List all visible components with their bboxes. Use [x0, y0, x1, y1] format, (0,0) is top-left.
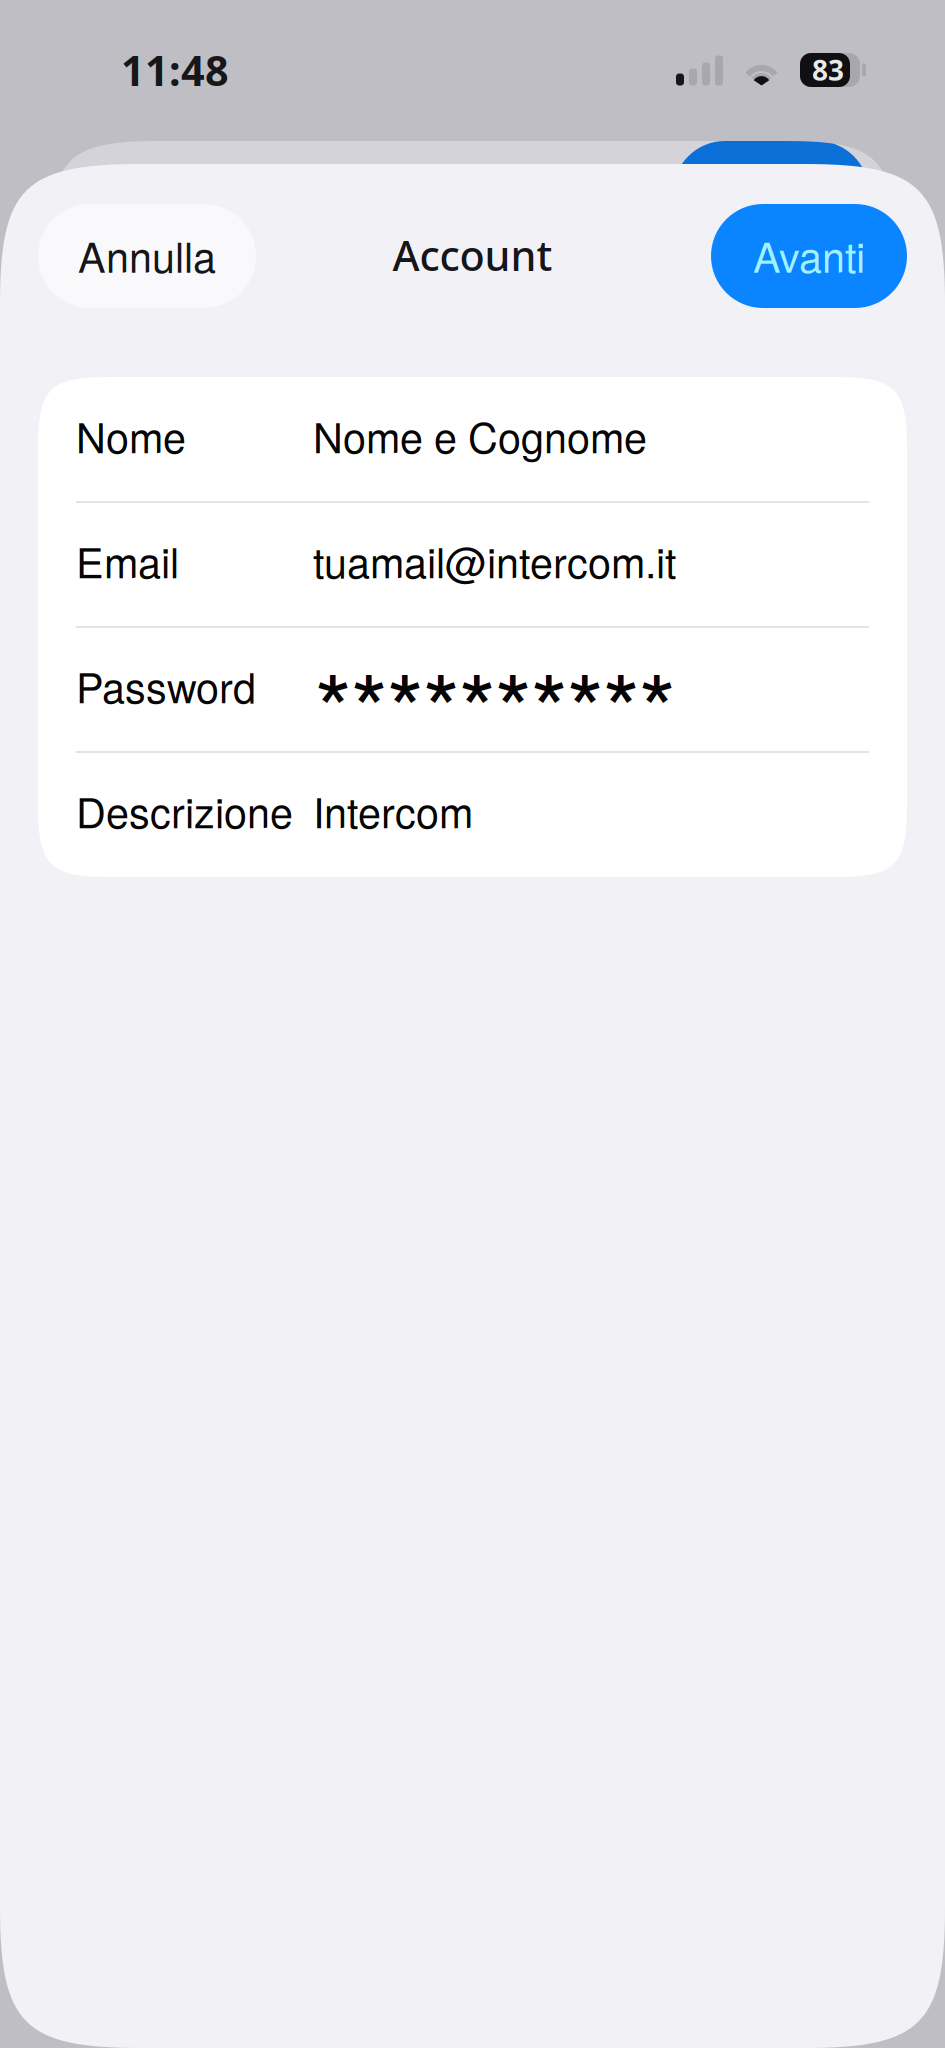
staticText: Nome: [76, 406, 186, 465]
staticText: Avanti: [753, 225, 865, 285]
staticText: Password: [76, 656, 256, 715]
staticText: 83: [812, 51, 844, 89]
staticText: ∗∗∗∗∗∗∗∗∗∗: [313, 617, 677, 732]
staticText: Descrizione: [76, 781, 293, 840]
staticText: 11:48: [121, 42, 229, 98]
staticText: Account: [392, 227, 552, 283]
button[interactable]: Avanti: [711, 204, 907, 308]
staticText: Email: [76, 531, 179, 590]
staticText: Intercom: [313, 781, 473, 840]
staticText: Annulla: [78, 225, 216, 285]
staticText: tuamail@intercom.it: [313, 531, 676, 590]
button[interactable]: Annulla: [38, 204, 256, 308]
staticText: Nome e Cognome: [313, 406, 647, 465]
